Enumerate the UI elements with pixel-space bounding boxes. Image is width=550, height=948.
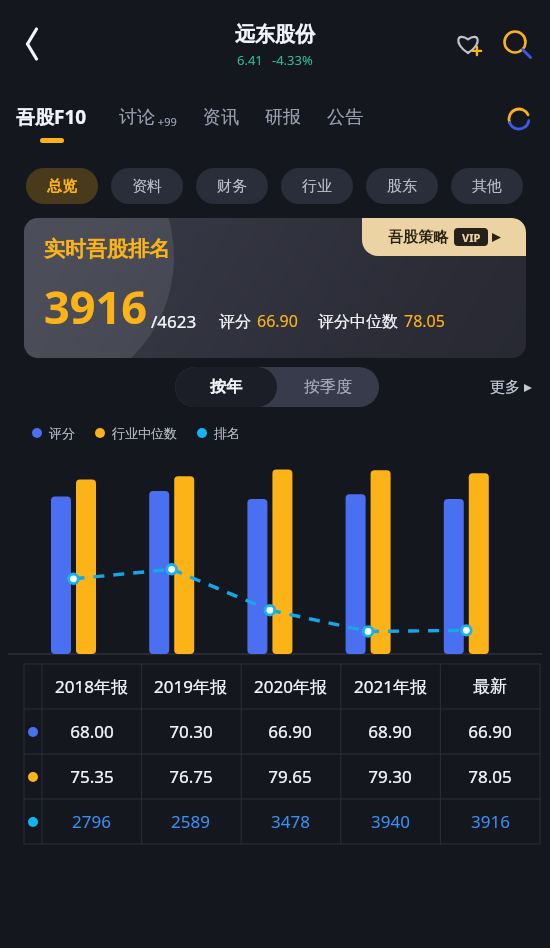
staticText: /4623 <box>151 310 197 333</box>
staticText: 2019年报 <box>154 675 227 698</box>
staticText: 按年 <box>210 377 242 397</box>
staticText: 2020年报 <box>254 675 327 698</box>
staticText: -4.33% <box>272 51 313 69</box>
staticText: 按季度 <box>304 377 352 397</box>
staticText: 2796 <box>72 810 111 833</box>
button[interactable]: 实时吾股排名 <box>24 218 526 358</box>
staticText: 行业中位数 <box>112 425 177 441</box>
staticText: 财务 <box>217 177 247 196</box>
staticText: 评分中位数 <box>318 312 398 332</box>
staticText: 行业 <box>302 177 332 196</box>
button[interactable]: 吾股策略 <box>362 218 526 256</box>
staticText: 68.90 <box>368 720 412 743</box>
staticText: 讨论 <box>119 106 155 129</box>
staticText: 3940 <box>371 810 410 833</box>
staticText: 评分 <box>49 425 75 441</box>
staticText: 排名 <box>214 425 240 441</box>
staticText: 3916 <box>471 810 510 833</box>
staticText: 76.75 <box>169 765 213 788</box>
staticText: 吾股F10 <box>16 104 87 130</box>
button[interactable]: 讨论 <box>119 106 177 129</box>
staticText: 资料 <box>132 177 162 196</box>
button[interactable]: Add to favourites <box>444 21 492 69</box>
button[interactable]: 财务 <box>196 168 268 204</box>
staticText: 最新 <box>473 676 507 697</box>
staticText: 75.35 <box>70 765 114 788</box>
staticText: 79.30 <box>368 765 412 788</box>
staticText: 70.30 <box>169 720 213 743</box>
staticText: 78.05 <box>468 765 512 788</box>
staticText: +99 <box>155 114 177 129</box>
staticText: 78.05 <box>404 310 445 332</box>
button[interactable]: 股东 <box>366 168 438 204</box>
staticText: 2589 <box>171 810 210 833</box>
staticText: 79.65 <box>268 765 312 788</box>
staticText: 3916 <box>44 276 147 337</box>
staticText: 66.90 <box>268 720 312 743</box>
button[interactable]: 按年 <box>175 367 277 407</box>
staticText: 实时吾股排名 <box>44 236 170 262</box>
button[interactable]: 更多 <box>490 378 532 397</box>
staticText: 2021年报 <box>354 675 427 698</box>
button[interactable]: 资讯 <box>203 106 239 129</box>
staticText: VIP <box>462 230 481 245</box>
button[interactable]: Refresh <box>502 102 536 136</box>
button[interactable]: 研报 <box>265 106 301 129</box>
button[interactable]: 资料 <box>111 168 183 204</box>
staticText: 其他 <box>472 177 502 196</box>
button[interactable]: Back <box>6 18 58 70</box>
button[interactable]: 其他 <box>451 168 523 204</box>
staticText: 66.90 <box>468 720 512 743</box>
button[interactable]: 公告 <box>327 106 363 129</box>
staticText: 66.90 <box>257 310 298 332</box>
staticText: 2018年报 <box>55 675 128 698</box>
button[interactable]: 总览 <box>26 168 98 204</box>
button[interactable]: 吾股F10 <box>16 104 87 143</box>
staticText: 68.00 <box>70 720 114 743</box>
staticText: 更多 <box>490 378 520 397</box>
button[interactable]: 行业 <box>281 168 353 204</box>
button[interactable]: Search <box>492 21 540 69</box>
staticText: 股东 <box>387 177 417 196</box>
staticText: 吾股策略 <box>388 228 448 247</box>
button[interactable]: 按季度 <box>277 367 379 407</box>
staticText: 评分 <box>219 312 251 332</box>
staticText: 总览 <box>47 177 77 196</box>
staticText: 远东股份 <box>235 22 315 47</box>
staticText: 3478 <box>271 810 310 833</box>
staticText: 6.41 <box>237 51 263 69</box>
